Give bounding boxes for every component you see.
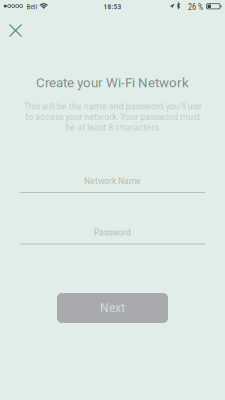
staticText: Password <box>94 227 131 237</box>
staticText: Bell <box>27 2 38 11</box>
button[interactable]: Password <box>20 227 205 257</box>
staticText: 18:53 <box>103 2 121 11</box>
staticText: Next <box>100 301 125 315</box>
button[interactable]: Close <box>0 17 30 43</box>
staticText: This will be the name and password you'l… <box>23 101 201 133</box>
button[interactable]: Network Name <box>20 176 205 206</box>
button[interactable]: Next <box>57 293 168 323</box>
staticText: Create your Wi-Fi Network <box>36 75 189 91</box>
staticText: 26 % <box>188 2 203 12</box>
staticText: Network Name <box>84 176 141 186</box>
